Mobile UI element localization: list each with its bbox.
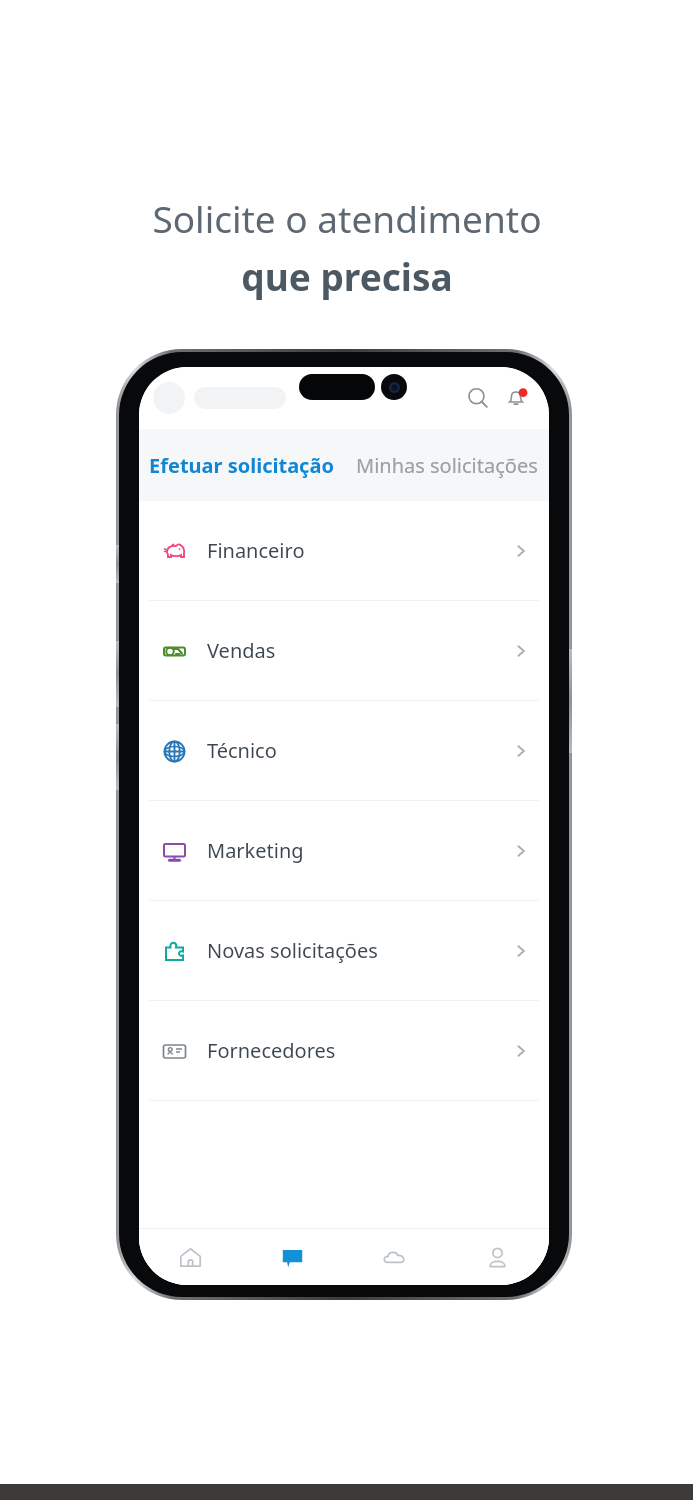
staticText: Técnico [207, 737, 277, 764]
button[interactable]: Efetuar solicitação [139, 429, 344, 501]
staticText: que precisa [241, 251, 453, 301]
button[interactable]: Account [446, 1229, 549, 1285]
staticText: Minhas solicitações [356, 452, 538, 479]
button[interactable]: Marketing [139, 801, 549, 900]
staticText: Fornecedores [207, 1037, 336, 1064]
button[interactable]: Profile [153, 382, 185, 414]
button[interactable]: Financeiro [139, 501, 549, 600]
button[interactable]: Vendas [139, 601, 549, 700]
button[interactable]: Técnico [139, 701, 549, 800]
button[interactable]: Minhas solicitações [344, 429, 549, 501]
staticText: Marketing [207, 837, 304, 864]
button[interactable]: Home [139, 1229, 241, 1285]
button[interactable]: Fornecedores [139, 1001, 549, 1100]
staticText: Solicite o atendimento [152, 193, 542, 243]
button[interactable]: Search [459, 379, 497, 417]
button[interactable]: Novas solicitações [139, 901, 549, 1000]
button[interactable]: Chat [241, 1229, 343, 1285]
button[interactable]: Notifications [497, 379, 535, 417]
staticText: Novas solicitações [207, 937, 378, 964]
staticText: Efetuar solicitação [149, 452, 334, 479]
button[interactable]: Cloud [343, 1229, 446, 1285]
staticText: Vendas [207, 637, 276, 664]
staticText: Financeiro [207, 537, 305, 564]
